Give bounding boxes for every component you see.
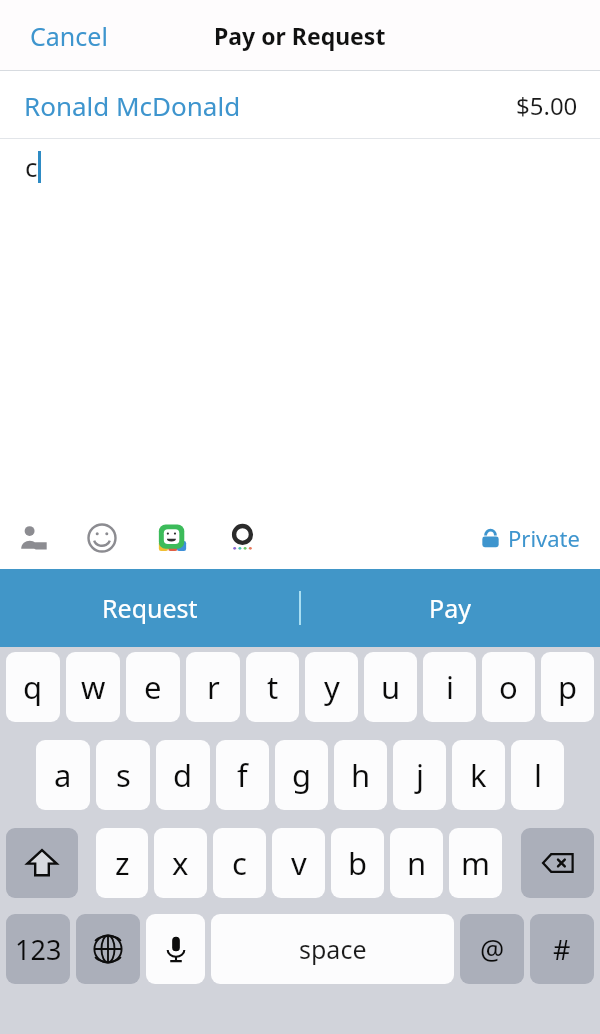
button[interactable]: o bbox=[482, 652, 535, 722]
button[interactable]: Emoji bbox=[82, 518, 122, 558]
button[interactable]: q bbox=[6, 652, 60, 722]
button[interactable]: r bbox=[186, 652, 240, 722]
button[interactable]: Shift bbox=[6, 828, 78, 898]
button[interactable]: x bbox=[154, 828, 207, 898]
staticText: h bbox=[351, 754, 371, 796]
button[interactable]: Bitmoji sticker bbox=[152, 518, 192, 558]
button[interactable]: Dictation bbox=[146, 914, 205, 984]
button[interactable]: i bbox=[423, 652, 476, 722]
button[interactable]: c bbox=[213, 828, 266, 898]
staticText: a bbox=[54, 754, 72, 796]
staticText: y bbox=[324, 666, 340, 708]
button[interactable]: t bbox=[246, 652, 299, 722]
button[interactable]: Private bbox=[477, 517, 584, 559]
button[interactable]: g bbox=[275, 740, 328, 810]
button[interactable]: k bbox=[452, 740, 505, 810]
button[interactable]: l bbox=[511, 740, 564, 810]
staticText: p bbox=[558, 666, 578, 708]
staticText: space bbox=[299, 932, 367, 966]
staticText: $5.00 bbox=[516, 89, 578, 122]
button[interactable]: # bbox=[530, 914, 594, 984]
staticText: Cancel bbox=[30, 19, 108, 53]
button[interactable]: e bbox=[126, 652, 180, 722]
button[interactable]: Add person bbox=[12, 518, 52, 558]
button[interactable]: y bbox=[305, 652, 358, 722]
staticText: 123 bbox=[15, 931, 62, 968]
button[interactable]: h bbox=[334, 740, 387, 810]
button[interactable]: a bbox=[36, 740, 90, 810]
staticText: u bbox=[381, 666, 401, 708]
staticText: x bbox=[172, 842, 189, 884]
staticText: g bbox=[292, 754, 312, 796]
button[interactable]: s bbox=[96, 740, 150, 810]
staticText: o bbox=[499, 666, 518, 708]
staticText: k bbox=[470, 754, 487, 796]
staticText: c bbox=[25, 149, 38, 184]
button[interactable]: d bbox=[156, 740, 210, 810]
button[interactable]: w bbox=[66, 652, 120, 722]
button[interactable]: m bbox=[449, 828, 502, 898]
staticText: @ bbox=[480, 931, 505, 968]
button[interactable]: space bbox=[211, 914, 454, 984]
staticText: b bbox=[348, 842, 368, 884]
staticText: s bbox=[116, 754, 131, 796]
staticText: # bbox=[553, 931, 571, 968]
button[interactable]: v bbox=[272, 828, 325, 898]
staticText: m bbox=[461, 842, 490, 884]
staticText: f bbox=[237, 754, 248, 796]
button[interactable]: Request bbox=[0, 569, 300, 647]
button[interactable]: Change keyboard bbox=[76, 914, 140, 984]
staticText: t bbox=[267, 666, 279, 708]
button[interactable]: p bbox=[541, 652, 594, 722]
staticText: n bbox=[407, 842, 427, 884]
button[interactable]: z bbox=[96, 828, 148, 898]
staticText: r bbox=[207, 666, 220, 708]
staticText: q bbox=[23, 666, 43, 708]
button[interactable]: c bbox=[0, 139, 600, 507]
staticText: l bbox=[534, 754, 542, 796]
staticText: i bbox=[446, 666, 454, 708]
button[interactable]: Pay bbox=[300, 569, 600, 647]
button[interactable]: Ronald McDonald bbox=[0, 71, 600, 139]
staticText: Request bbox=[102, 591, 198, 625]
staticText: j bbox=[416, 754, 424, 796]
button[interactable]: GIF bbox=[222, 518, 262, 558]
staticText: w bbox=[81, 666, 106, 708]
button[interactable]: u bbox=[364, 652, 417, 722]
staticText: Private bbox=[508, 523, 580, 553]
button[interactable]: b bbox=[331, 828, 384, 898]
button[interactable]: @ bbox=[460, 914, 524, 984]
staticText: v bbox=[291, 842, 307, 884]
button[interactable]: Backspace bbox=[521, 828, 594, 898]
staticText: Pay bbox=[429, 591, 471, 625]
staticText: z bbox=[115, 842, 130, 884]
button[interactable]: j bbox=[393, 740, 446, 810]
button[interactable]: 123 bbox=[6, 914, 70, 984]
button[interactable]: Cancel bbox=[8, 7, 130, 65]
staticText: Pay or Request bbox=[214, 20, 386, 51]
staticText: c bbox=[232, 842, 247, 884]
button[interactable]: n bbox=[390, 828, 443, 898]
staticText: d bbox=[173, 754, 193, 796]
button[interactable]: f bbox=[216, 740, 269, 810]
staticText: e bbox=[144, 666, 162, 708]
staticText: Ronald McDonald bbox=[24, 88, 241, 123]
